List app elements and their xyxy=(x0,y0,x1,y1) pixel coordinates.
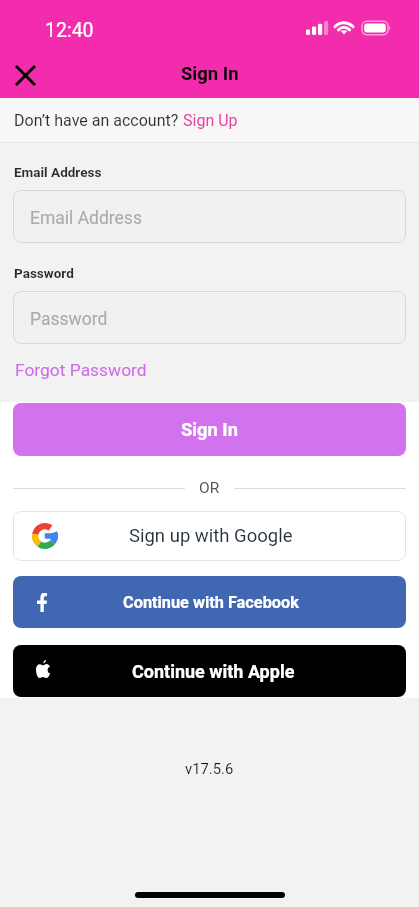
other: Signal, Wi-Fi and battery status xyxy=(306,21,392,35)
staticText: Forgot Password xyxy=(15,360,147,380)
staticText: Sign In xyxy=(181,419,238,440)
button[interactable]: Email Address xyxy=(13,190,406,243)
staticText: v17.5.6 xyxy=(185,760,234,777)
button[interactable]: Don’t have an account? xyxy=(0,98,419,142)
button[interactable]: Close xyxy=(5,55,45,95)
staticText: Continue with Facebook xyxy=(123,593,299,612)
button[interactable]: Sign up with Google xyxy=(13,511,406,561)
staticText: Email Address xyxy=(30,208,142,229)
button[interactable]: Forgot Password xyxy=(8,356,154,384)
staticText: Password xyxy=(14,265,74,281)
staticText: Sign up with Google xyxy=(129,525,293,547)
staticText: Password xyxy=(30,309,108,330)
staticText: 12:40 xyxy=(45,19,94,42)
button[interactable]: Sign In xyxy=(13,403,406,456)
button[interactable]: Continue with Apple xyxy=(13,645,406,697)
staticText: Don’t have an account? xyxy=(14,111,183,130)
button[interactable]: Continue with Facebook xyxy=(13,576,406,628)
staticText: Continue with Apple xyxy=(132,661,295,682)
staticText: Email Address xyxy=(14,164,102,180)
staticText: Sign Up xyxy=(183,111,238,130)
button[interactable]: Password xyxy=(13,291,406,344)
staticText: OR xyxy=(199,479,220,497)
staticText: Sign In xyxy=(181,63,239,85)
